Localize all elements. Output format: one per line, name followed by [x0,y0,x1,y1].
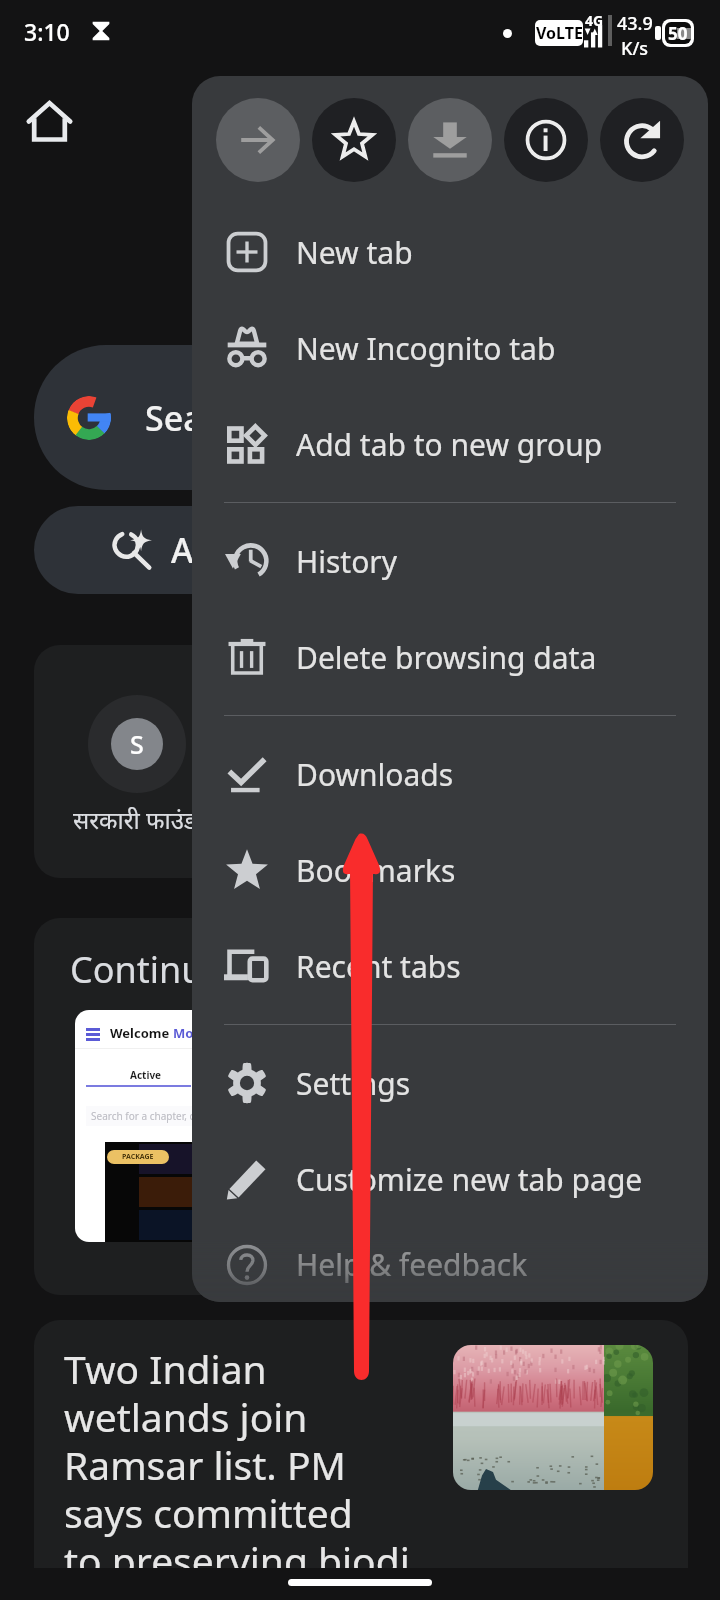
staticText: Welcome [110,1024,173,1042]
staticText: PACKAGE [122,1152,154,1162]
staticText: VoLTE [536,22,583,44]
button[interactable]: Bookmark [312,98,396,182]
button[interactable]: Recent tabs [192,918,708,1014]
staticText: New Incognito tab [296,328,556,369]
button[interactable]: Download [408,98,492,182]
staticText: Mohib [173,1024,214,1042]
staticText: Help & feedback [296,1244,528,1285]
staticText: Delete browsing data [296,637,597,678]
button[interactable]: Customize new tab page [192,1131,708,1227]
staticText: Customize new tab page [296,1159,643,1200]
button[interactable]: History [192,513,708,609]
staticText: S [130,727,144,761]
staticText: K/s [621,36,649,61]
staticText: Downloads [296,754,454,795]
button[interactable]: Home [16,88,82,154]
staticText: Add tab to new group [296,424,603,465]
staticText: 3:10 [24,16,70,47]
button[interactable]: Bookmarks [192,822,708,918]
button[interactable]: Delete browsing data [192,609,708,705]
staticText: Bookmarks [296,850,456,891]
staticText: 43.9 [617,11,653,36]
staticText: Active [130,1068,162,1082]
staticText: 4G [585,11,604,30]
staticText: Settings [296,1063,411,1104]
button[interactable]: Reload [600,98,684,182]
button[interactable]: Two Indian wetlands join Ramsar list. PM… [34,1320,688,1568]
button[interactable]: New Incognito tab [192,300,708,396]
staticText: New tab [296,232,413,273]
button[interactable]: AI [34,506,374,594]
staticText: Continue [70,945,224,994]
button[interactable]: Page info [504,98,588,182]
staticText: Search [145,395,255,441]
button[interactable]: Forward [216,98,300,182]
staticText: 50 [668,22,688,44]
staticText: History [296,541,398,582]
button[interactable]: Search [34,345,374,490]
button[interactable]: Add tab to new group [192,396,708,492]
button[interactable]: Settings [192,1035,708,1131]
staticText: Two Indian wetlands join Ramsar list. PM… [64,1342,410,1568]
staticText: सरकारी फाउंड [73,803,197,836]
button[interactable]: Help & feedback [192,1227,708,1302]
button[interactable]: Continue [34,918,334,1295]
staticText: AI [171,527,206,573]
staticText: Recent tabs [296,946,461,987]
button[interactable]: S [34,645,334,878]
button[interactable]: New tab [192,204,708,300]
button[interactable]: Downloads [192,726,708,822]
staticText: Search for a chapter, course o [91,1109,230,1123]
